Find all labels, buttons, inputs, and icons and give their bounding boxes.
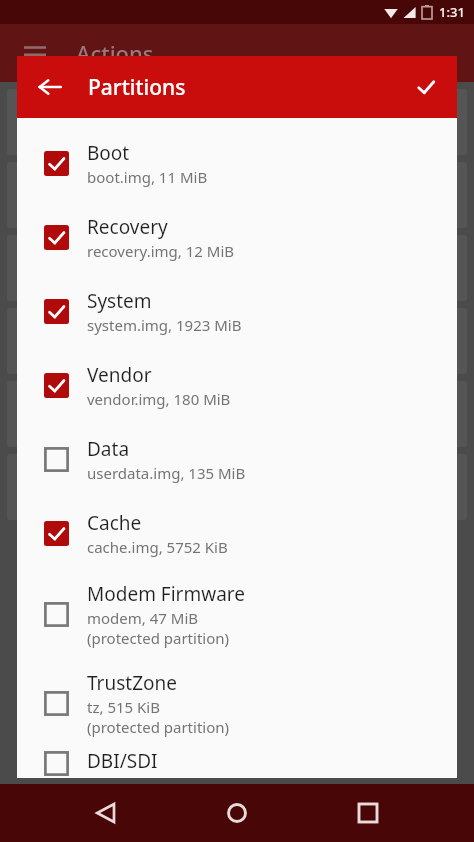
button[interactable]: Recent apps <box>343 788 393 838</box>
staticText: (protected partition) <box>87 717 230 737</box>
staticText: TrustZone <box>87 670 177 696</box>
staticText: DBI/SDI <box>87 748 158 774</box>
staticText: Recovery <box>87 214 168 240</box>
button[interactable]: Boot <box>17 126 457 200</box>
button[interactable]: Vendor <box>17 348 457 422</box>
staticText: system.img, 1923 MiB <box>87 315 242 335</box>
button[interactable]: Modem Firmware <box>17 570 457 659</box>
staticText: System <box>87 288 152 314</box>
button[interactable]: Back <box>27 64 73 110</box>
staticText: boot.img, 11 MiB <box>87 167 208 187</box>
staticText: Partitions <box>88 73 186 102</box>
button[interactable]: Confirm selection <box>403 64 449 110</box>
button[interactable]: System <box>17 274 457 348</box>
staticText: Data <box>87 436 130 462</box>
staticText: vendor.img, 180 MiB <box>87 389 231 409</box>
staticText: Vendor <box>87 362 152 388</box>
button[interactable]: DBI/SDI <box>17 748 457 778</box>
staticText: Cache <box>87 510 142 536</box>
staticText: Actions <box>76 38 154 68</box>
staticText: userdata.img, 135 MiB <box>87 463 246 483</box>
button[interactable]: Cache <box>17 496 457 570</box>
staticText: Modem Firmware <box>87 581 245 607</box>
staticText: tz, 515 KiB <box>87 697 160 717</box>
staticText: (protected partition) <box>87 628 230 648</box>
staticText: modem, 47 MiB <box>87 608 199 628</box>
button[interactable]: Recovery <box>17 200 457 274</box>
button[interactable]: TrustZone <box>17 659 457 748</box>
staticText: recovery.img, 12 MiB <box>87 241 235 261</box>
staticText: 1:31 <box>439 3 465 21</box>
button[interactable]: Back <box>81 788 131 838</box>
button[interactable]: Home <box>212 788 262 838</box>
staticText: Boot <box>87 140 130 166</box>
button[interactable]: Data <box>17 422 457 496</box>
staticText: cache.img, 5752 KiB <box>87 537 228 557</box>
